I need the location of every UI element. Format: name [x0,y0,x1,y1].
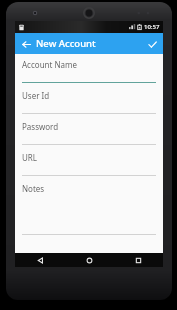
button[interactable]: Back [15,253,65,267]
staticText: Password [22,121,59,132]
button[interactable]: User Id [22,90,156,121]
button[interactable]: Password [22,121,156,152]
button[interactable]: Home [65,253,114,267]
button[interactable]: Notes [22,183,156,242]
button[interactable]: Navigate up [19,37,33,51]
button[interactable]: Recent apps [114,253,163,267]
staticText: Notes [22,183,45,194]
staticText: New Account [36,37,96,50]
staticText: Account Name [22,59,78,70]
button[interactable]: URL [22,152,156,183]
staticText: URL [22,152,38,163]
button[interactable]: Account Name [22,59,156,90]
button[interactable]: Save account [145,37,159,51]
staticText: User Id [22,90,50,101]
staticText: 10:57 [144,23,160,31]
